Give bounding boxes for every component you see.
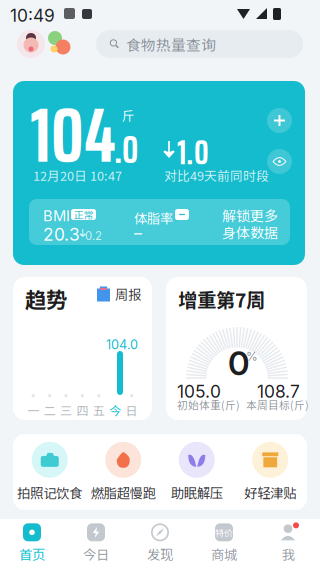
staticText: 三	[60, 401, 72, 419]
staticText: .0	[114, 119, 138, 180]
staticText: –	[134, 223, 142, 242]
button[interactable]: Profile	[17, 30, 45, 58]
staticText: 正常	[73, 207, 93, 222]
staticText: 10:49	[10, 5, 55, 26]
staticText: 我	[281, 544, 294, 564]
staticText: 体脂率	[134, 208, 173, 227]
button[interactable]: 拍照记饮食	[13, 434, 86, 510]
staticText: 五	[93, 401, 105, 419]
button[interactable]: Hide values	[267, 149, 292, 174]
button[interactable]: 发现	[128, 519, 192, 568]
staticText: 对比49天前同时段	[164, 166, 269, 184]
staticText: 1.0	[177, 125, 209, 180]
staticText: 特价	[215, 526, 233, 539]
staticText: 今日	[83, 544, 109, 564]
staticText: 首页	[19, 544, 45, 564]
staticText: 105.0	[177, 381, 221, 402]
staticText: 日	[126, 401, 138, 419]
staticText: 拍照记饮食	[17, 483, 82, 502]
button[interactable]: 我	[256, 519, 320, 568]
staticText: 助眠解压	[171, 483, 223, 502]
staticText: 0	[228, 343, 250, 383]
staticText: 12月20日 10:47	[33, 166, 122, 184]
staticText: 0.2	[85, 229, 102, 243]
button[interactable]: Add weight record	[267, 108, 292, 133]
staticText: 增重第7周	[178, 285, 265, 313]
staticText: 初始体重(斤)	[177, 397, 240, 412]
staticText: 好轻津贴	[244, 483, 296, 502]
button[interactable]: 首页	[0, 519, 64, 568]
button[interactable]: 趋势	[13, 277, 152, 420]
button[interactable]: 特价	[192, 519, 256, 568]
button[interactable]: 增重第7周	[166, 277, 307, 420]
staticText: 本周目标(斤)	[246, 397, 309, 412]
staticText: 身体数据	[222, 222, 278, 242]
staticText: 食物热量查询	[126, 33, 216, 55]
staticText: %	[246, 349, 258, 363]
staticText: 发现	[147, 544, 173, 564]
button[interactable]: 燃脂超慢跑	[86, 434, 160, 510]
staticText: 二	[44, 401, 56, 419]
button[interactable]: 好轻津贴	[233, 434, 307, 510]
button[interactable]: 食物热量查询	[96, 30, 303, 58]
staticText: 解锁更多	[222, 205, 278, 225]
staticText: 今	[109, 401, 121, 419]
staticText: 104	[30, 74, 116, 196]
staticText: 商城	[211, 544, 237, 564]
button[interactable]: Rewards	[46, 30, 74, 58]
staticText: 趋势	[25, 283, 67, 314]
staticText: 四	[76, 401, 88, 419]
button[interactable]: 今日	[64, 519, 128, 568]
staticText: BMI	[43, 207, 70, 225]
staticText: 斤	[122, 106, 135, 124]
staticText: 108.7	[257, 381, 300, 402]
staticText: 104.0	[106, 337, 138, 352]
button[interactable]: 助眠解压	[160, 434, 233, 510]
staticText: 一	[27, 401, 39, 419]
staticText: 燃脂超慢跑	[91, 483, 156, 502]
staticText: 周报	[115, 284, 141, 304]
staticText: 20.3	[43, 224, 80, 245]
